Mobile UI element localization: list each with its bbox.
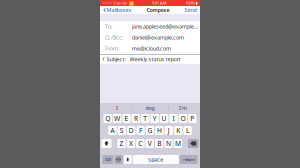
button[interactable]: A [108,126,117,135]
staticText: Y [153,114,157,123]
staticText: me@icloud.com [132,45,171,52]
staticText: Send [184,6,196,14]
button[interactable]: F [136,126,145,135]
staticText: P [190,114,194,123]
staticText: Weekly status report [129,56,180,63]
button[interactable]: dog [132,103,168,113]
button[interactable]: D [127,126,135,135]
button[interactable]: G [146,126,154,135]
staticText: R [134,114,138,123]
button[interactable]: Q [103,114,112,123]
button[interactable]: Subject: [100,55,200,64]
button[interactable]: I [102,103,131,113]
staticText: Cc/Bcc: [105,34,123,41]
button[interactable]: Dictate [124,155,132,164]
button[interactable]: H [155,126,164,135]
staticText: 123 [105,157,111,162]
staticText: F [139,126,142,135]
staticText: 9:41 AM [152,0,167,6]
staticText: B [157,139,161,148]
staticText: Compose [146,6,169,14]
button[interactable]: B [155,139,163,148]
button[interactable]: P [188,114,196,123]
staticText: daniel@example.com [132,34,184,41]
button[interactable]: S [118,126,126,135]
staticText: I’m [179,104,187,112]
button[interactable]: T [141,114,149,123]
button[interactable]: C [136,139,145,148]
button[interactable]: E [122,114,131,123]
button[interactable]: K [174,126,182,135]
staticText: N [166,139,171,148]
staticText: 100% ▮ [185,0,197,6]
staticText: I [172,114,174,123]
staticText: D [129,126,134,135]
staticText: G [147,126,152,135]
button[interactable]: Y [150,114,159,123]
button[interactable]: 123 [102,155,113,164]
staticText: W [114,114,120,123]
button[interactable]: L [183,126,192,135]
button[interactable]: return [180,155,198,164]
staticText: return [183,157,194,162]
button[interactable]: Shift [101,139,111,148]
staticText: K [176,126,180,135]
button[interactable]: I’m [168,103,197,113]
button[interactable]: From: [100,43,200,54]
staticText: J [168,126,170,135]
staticText: jane.appleseed@example.com [132,23,198,30]
staticText: C [138,139,142,148]
staticText: E [124,114,128,123]
button[interactable]: V [146,139,154,148]
staticText: I [116,104,118,112]
button[interactable]: N [164,139,173,148]
staticText: Subject: [106,56,125,63]
staticText: V [148,139,152,148]
staticText: T [143,114,147,123]
staticText: ••••• Carrier 📶 [102,0,133,6]
button[interactable]: R [132,114,140,123]
staticText: X [129,139,133,148]
staticText: L [186,126,189,135]
button[interactable]: Delete [188,139,198,148]
staticText: From: [105,45,119,52]
staticText: To: [105,23,112,30]
button[interactable]: Mailboxes [102,6,132,14]
button[interactable]: Switch keyboard [114,155,123,164]
staticText: O [180,114,185,123]
button[interactable]: J [165,126,173,135]
button[interactable]: Send [183,6,197,14]
staticText: Z [119,139,123,148]
staticText: dog [145,104,154,112]
staticText: space [148,156,163,163]
staticText: Q [105,114,110,123]
staticText: A [110,126,114,135]
button[interactable]: X [127,139,135,148]
button[interactable]: W [113,114,121,123]
staticText: H [157,126,162,135]
staticText: S [120,126,124,135]
staticText: U [162,114,167,123]
button[interactable]: space [133,155,179,164]
button[interactable]: Z [117,139,126,148]
staticText: M [175,139,181,148]
staticText: Mailboxes [106,6,131,14]
button[interactable]: O [179,114,187,123]
button[interactable]: U [160,114,168,123]
button[interactable]: I [169,114,178,123]
button[interactable]: M [174,139,182,148]
button[interactable]: To: [100,21,200,32]
button[interactable]: Cc/Bcc: [100,32,200,43]
